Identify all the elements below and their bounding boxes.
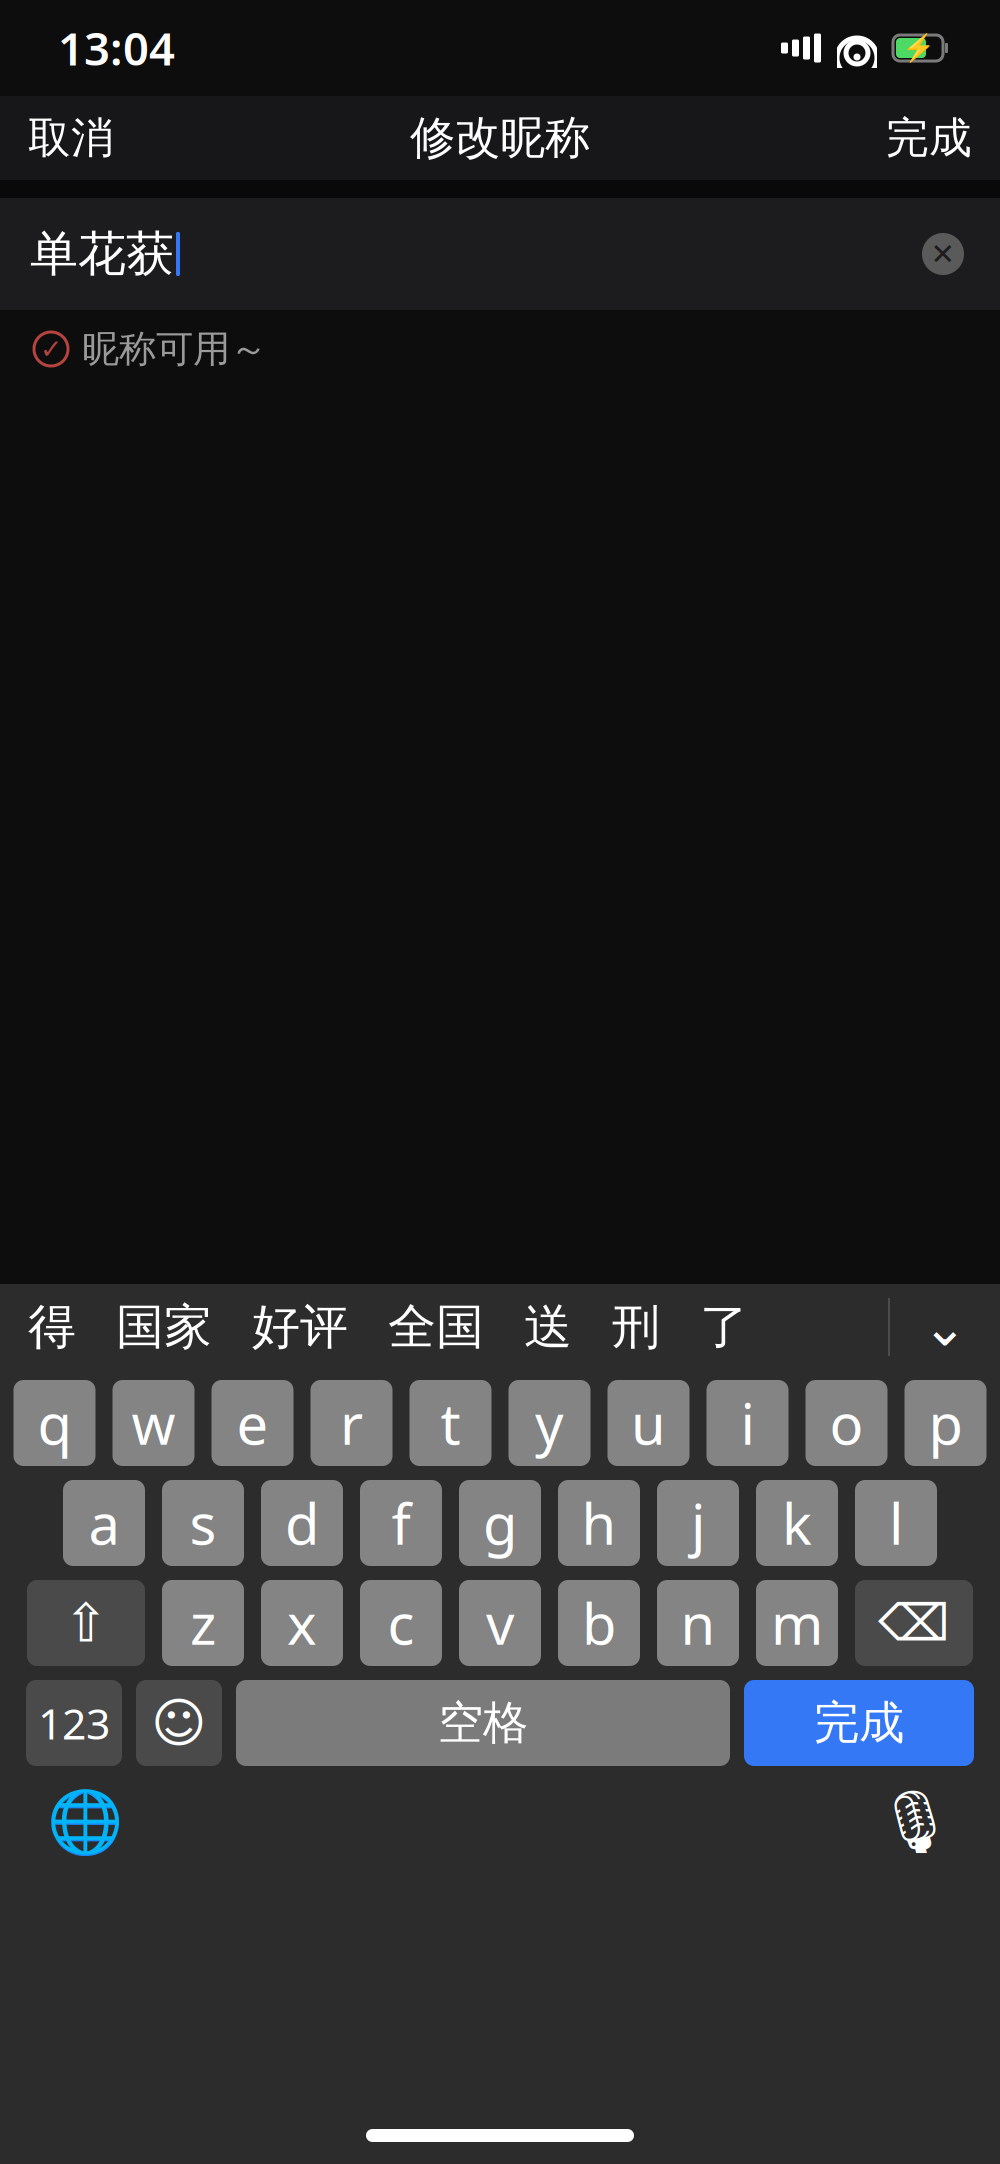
staticText: e	[236, 1386, 268, 1460]
button[interactable]: 删除	[855, 1580, 973, 1666]
button[interactable]: 切换键盘	[30, 1774, 140, 1870]
button[interactable]: 数字键盘	[26, 1680, 122, 1766]
staticText: 完成	[814, 1695, 904, 1751]
staticText: 好评	[252, 1297, 348, 1356]
button[interactable]: g	[459, 1480, 541, 1566]
staticText: i	[740, 1386, 754, 1460]
staticText: d	[285, 1486, 319, 1560]
staticText: q	[37, 1386, 71, 1460]
button[interactable]: n	[657, 1580, 739, 1666]
staticText: j	[691, 1486, 705, 1560]
button[interactable]: x	[261, 1580, 343, 1666]
staticText: h	[581, 1486, 616, 1560]
button[interactable]: 刑	[592, 1284, 680, 1370]
button[interactable]: 了	[680, 1284, 768, 1370]
staticText: 13:04	[58, 18, 175, 78]
button[interactable]: 完成	[860, 96, 998, 180]
button[interactable]: i	[706, 1380, 788, 1466]
button[interactable]: v	[459, 1580, 541, 1666]
staticText: 了	[700, 1297, 748, 1356]
button[interactable]: l	[855, 1480, 937, 1566]
staticText: ☺	[151, 1693, 207, 1753]
staticText: v	[486, 1586, 514, 1660]
staticText: ⌫	[878, 1594, 950, 1652]
button[interactable]: Shift	[27, 1580, 145, 1666]
button[interactable]: q	[13, 1380, 95, 1466]
button[interactable]: t	[409, 1380, 491, 1466]
button[interactable]: c	[360, 1580, 442, 1666]
staticText: 刑	[612, 1297, 660, 1356]
staticText: 🌐	[47, 1787, 123, 1857]
staticText: 空格	[438, 1695, 528, 1751]
staticText: l	[889, 1486, 903, 1560]
staticText: ⇧	[63, 1593, 108, 1653]
staticText: c	[387, 1586, 414, 1660]
button[interactable]: o	[805, 1380, 887, 1466]
staticText: y	[535, 1386, 564, 1460]
staticText: 123	[38, 1695, 110, 1751]
staticText: 昵称可用～	[82, 326, 267, 372]
button[interactable]: r	[310, 1380, 392, 1466]
staticText: b	[582, 1586, 616, 1660]
staticText: 国家	[116, 1297, 212, 1356]
staticText: 送	[524, 1297, 572, 1356]
button[interactable]: u	[607, 1380, 689, 1466]
button[interactable]: 全国	[368, 1284, 504, 1370]
staticText: 取消	[28, 112, 114, 164]
staticText: w	[131, 1386, 175, 1460]
button[interactable]: d	[261, 1480, 343, 1566]
button[interactable]: 空格	[236, 1680, 730, 1766]
staticText: 单花获	[30, 224, 174, 283]
button[interactable]: j	[657, 1480, 739, 1566]
staticText: f	[391, 1486, 410, 1560]
staticText: ✕	[930, 237, 955, 271]
staticText: 修改昵称	[410, 110, 590, 166]
button[interactable]: p	[904, 1380, 986, 1466]
staticText: t	[440, 1386, 460, 1460]
staticText: o	[829, 1386, 863, 1460]
button[interactable]: y	[508, 1380, 590, 1466]
button[interactable]: s	[162, 1480, 244, 1566]
staticText: p	[928, 1386, 962, 1460]
staticText: g	[483, 1486, 517, 1560]
staticText: z	[190, 1586, 216, 1660]
staticText: r	[340, 1386, 363, 1460]
staticText: x	[287, 1586, 317, 1660]
button[interactable]: z	[162, 1580, 244, 1666]
staticText: k	[782, 1486, 812, 1560]
staticText: 完成	[886, 112, 972, 164]
button[interactable]: w	[112, 1380, 194, 1466]
button[interactable]: a	[63, 1480, 145, 1566]
button[interactable]: 送	[504, 1284, 592, 1370]
button[interactable]: e	[211, 1380, 293, 1466]
staticText: m	[771, 1586, 823, 1660]
staticText: a	[88, 1486, 119, 1560]
button[interactable]: 得	[8, 1284, 96, 1370]
button[interactable]: m	[756, 1580, 838, 1666]
button[interactable]: 收起候选	[890, 1284, 1000, 1370]
staticText: 🎙	[876, 1787, 954, 1857]
staticText: ⚡	[901, 33, 934, 63]
button[interactable]: 取消	[2, 96, 140, 180]
staticText: u	[631, 1386, 666, 1460]
button[interactable]: 好评	[232, 1284, 368, 1370]
button[interactable]: 完成	[744, 1680, 974, 1766]
staticText: n	[680, 1586, 715, 1660]
staticText: ✓	[40, 334, 62, 364]
staticText: s	[189, 1486, 216, 1560]
staticText: 得	[28, 1297, 76, 1356]
button[interactable]: 语音输入	[860, 1774, 970, 1870]
staticText: ⌄	[922, 1297, 967, 1357]
button[interactable]: 国家	[96, 1284, 232, 1370]
button[interactable]: b	[558, 1580, 640, 1666]
button[interactable]: h	[558, 1480, 640, 1566]
staticText: 全国	[388, 1297, 484, 1356]
button[interactable]: f	[360, 1480, 442, 1566]
button[interactable]: k	[756, 1480, 838, 1566]
button[interactable]: 表情	[136, 1680, 222, 1766]
button[interactable]: 清除	[908, 219, 978, 289]
